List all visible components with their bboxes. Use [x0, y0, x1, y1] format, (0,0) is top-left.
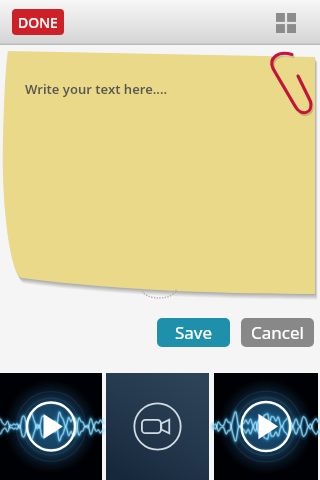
- button[interactable]: Play audio recording: [0, 373, 102, 480]
- staticText: Save: [175, 321, 213, 344]
- button[interactable]: Grid view: [270, 7, 302, 39]
- staticText: Cancel: [251, 321, 304, 344]
- button[interactable]: Play audio recording: [214, 373, 318, 480]
- staticText: Write your text here....: [25, 80, 168, 98]
- button[interactable]: Cancel: [241, 318, 314, 347]
- staticText: DONE: [18, 13, 58, 32]
- button[interactable]: Play video: [106, 373, 209, 480]
- button[interactable]: Save: [157, 318, 230, 347]
- button[interactable]: DONE: [12, 9, 64, 35]
